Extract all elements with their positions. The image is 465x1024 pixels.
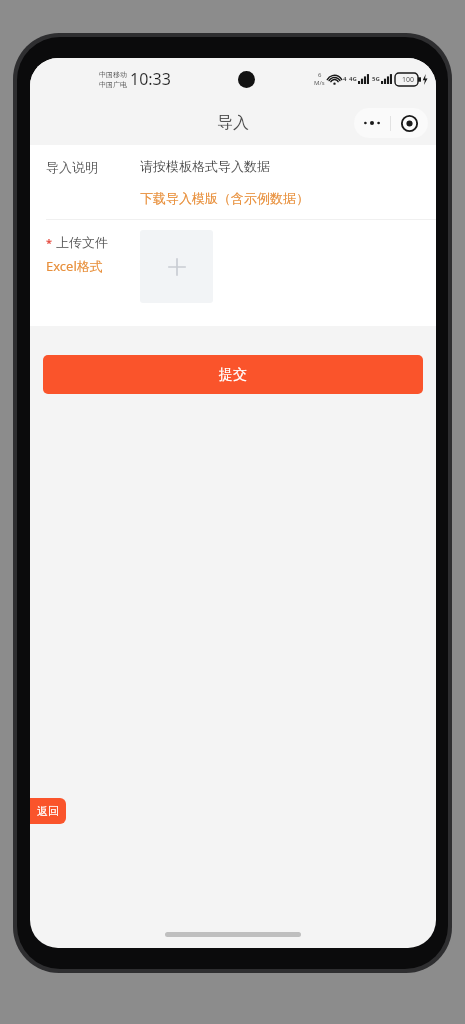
staticText: 6 xyxy=(318,71,322,79)
staticText: 中国广电 xyxy=(99,80,127,89)
staticText: 请按模板格式导入数据 xyxy=(140,158,270,174)
staticText: * xyxy=(46,235,52,250)
button[interactable]: More options xyxy=(354,108,390,138)
button[interactable]: 下载导入模版（含示例数据） xyxy=(140,190,309,206)
button[interactable]: Close mini program xyxy=(391,108,428,138)
staticText: 5G xyxy=(372,75,380,83)
staticText: 返回 xyxy=(37,804,59,818)
staticText: 下载导入模版（含示例数据） xyxy=(140,190,309,206)
staticText: Excel格式 xyxy=(46,257,103,275)
button[interactable]: Upload file xyxy=(140,230,213,303)
staticText: 提交 xyxy=(219,366,247,384)
staticText: 上传文件 xyxy=(56,234,108,250)
staticText: 4 xyxy=(343,75,347,83)
staticText: 导入说明 xyxy=(46,159,98,175)
button[interactable]: 返回 xyxy=(30,798,66,824)
staticText: 100 xyxy=(402,75,415,85)
staticText: 10:33 xyxy=(130,68,171,90)
button[interactable]: 提交 xyxy=(43,355,423,394)
staticText: 导入 xyxy=(217,113,249,133)
staticText: 4G xyxy=(349,75,357,83)
staticText: 中国移动 xyxy=(99,70,127,79)
staticText: M/s xyxy=(314,79,325,87)
